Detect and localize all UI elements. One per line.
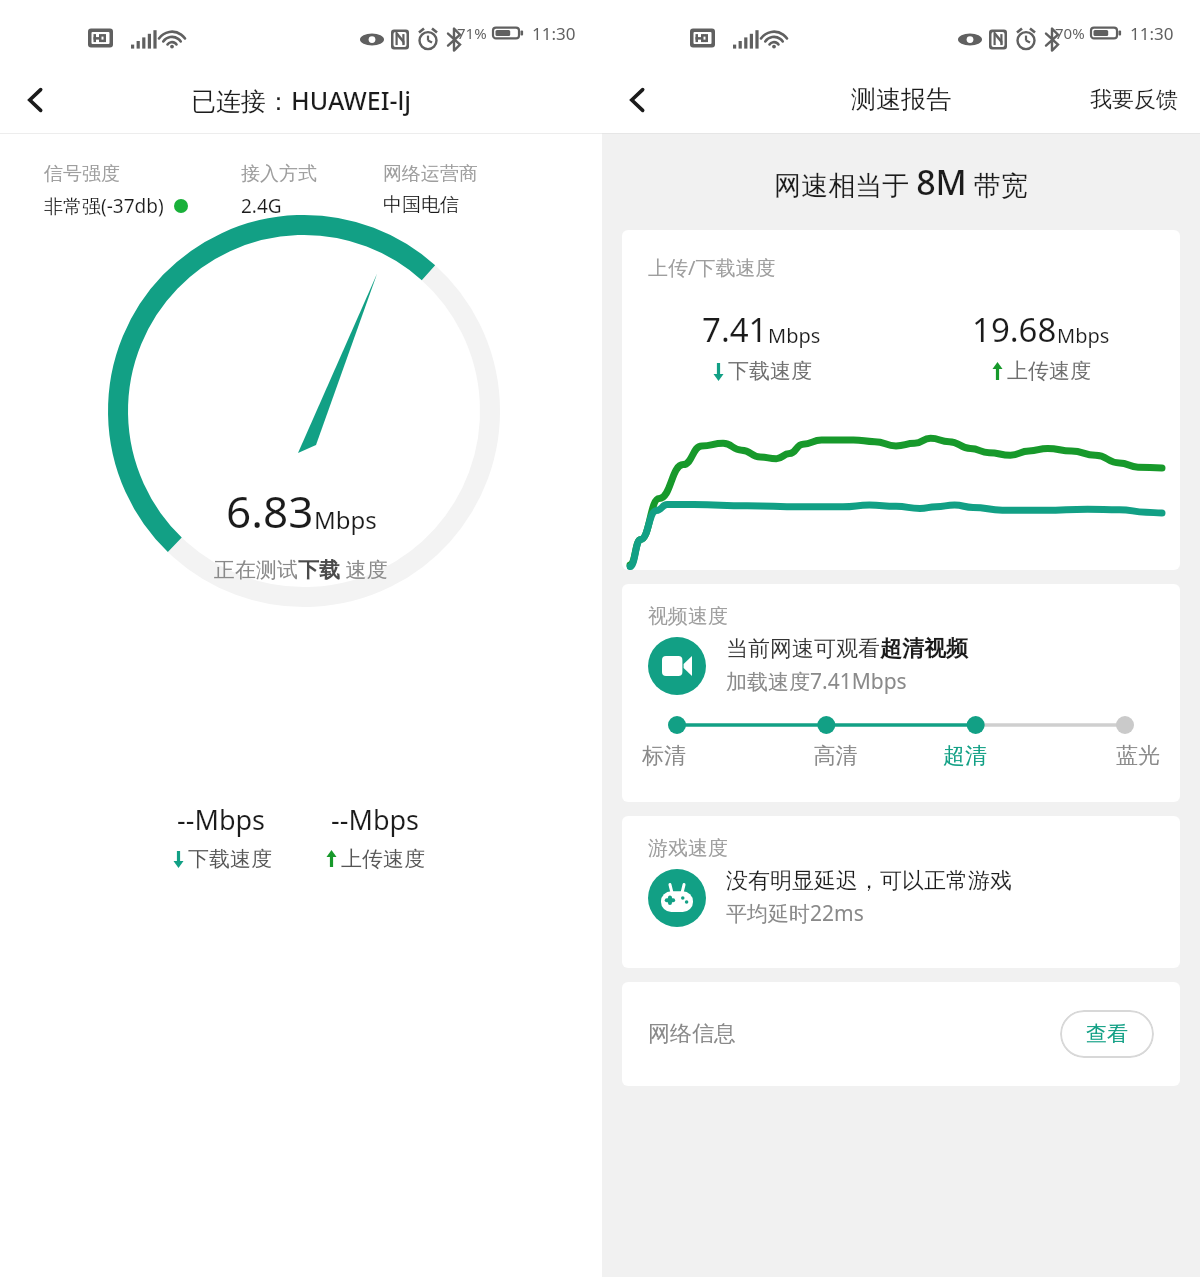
button[interactable]: 我要反馈	[1068, 74, 1200, 126]
button[interactable]: 上传/下载速度	[622, 230, 1180, 570]
staticText: Mbps	[314, 503, 377, 536]
button[interactable]: 视频速度	[622, 584, 1180, 802]
staticText: 加载速度7.41Mbps	[726, 667, 907, 696]
staticText: Mbps	[1057, 322, 1110, 349]
button[interactable]: 高清	[771, 742, 900, 770]
button[interactable]: 超清	[900, 742, 1030, 770]
staticText: 测速报告	[851, 84, 951, 115]
staticText: 上传速度	[341, 846, 425, 872]
staticText: 已连接：HUAWEI-lj	[191, 83, 412, 117]
staticText: 19.68	[972, 307, 1057, 352]
staticText: 正在测试下载 速度	[214, 555, 388, 584]
staticText: 6.83	[226, 481, 314, 541]
staticText: 下载速度	[188, 846, 272, 872]
staticText: 超清	[900, 742, 1030, 770]
staticText: 网速相当于 8M 带宽	[774, 159, 1028, 205]
staticText: 视频速度	[648, 604, 728, 629]
staticText: 中国电信	[383, 193, 459, 217]
button[interactable]: 游戏速度	[622, 816, 1180, 968]
staticText: 71%	[457, 23, 487, 43]
staticText: 没有明显延迟，可以正常游戏	[726, 867, 1012, 895]
staticText: --Mbps	[177, 801, 266, 838]
staticText: 11:30	[1130, 22, 1174, 45]
staticText: 查看	[1086, 1021, 1128, 1047]
staticText: 上传/下载速度	[648, 254, 776, 281]
staticText: 高清	[771, 742, 900, 770]
button[interactable]: 网络信息	[622, 982, 1180, 1086]
staticText: 标清	[642, 742, 771, 770]
staticText: 当前网速可观看超清视频	[726, 635, 968, 663]
button[interactable]: Back	[610, 72, 666, 128]
staticText: 7.41	[702, 307, 768, 352]
staticText: 70%	[1055, 23, 1085, 43]
button[interactable]: Back	[8, 72, 64, 128]
staticText: 非常强(-37db)	[44, 193, 164, 219]
button[interactable]: 查看	[1060, 1010, 1154, 1058]
staticText: 我要反馈	[1090, 86, 1178, 114]
button[interactable]: 蓝光	[1030, 742, 1160, 770]
staticText: 11:30	[532, 22, 576, 45]
staticText: 平均延时22ms	[726, 899, 864, 928]
staticText: 信号强度	[44, 162, 120, 186]
staticText: 2.4G	[241, 193, 282, 219]
button[interactable]: 标清	[642, 742, 771, 770]
staticText: Mbps	[768, 322, 821, 349]
staticText: --Mbps	[331, 801, 420, 838]
staticText: 游戏速度	[648, 836, 728, 861]
staticText: 网络信息	[648, 1020, 736, 1048]
staticText: 下载速度	[728, 358, 812, 384]
staticText: 上传速度	[1007, 358, 1091, 384]
staticText: 蓝光	[1030, 742, 1160, 770]
staticText: 网络运营商	[383, 162, 478, 186]
staticText: 接入方式	[241, 162, 317, 186]
